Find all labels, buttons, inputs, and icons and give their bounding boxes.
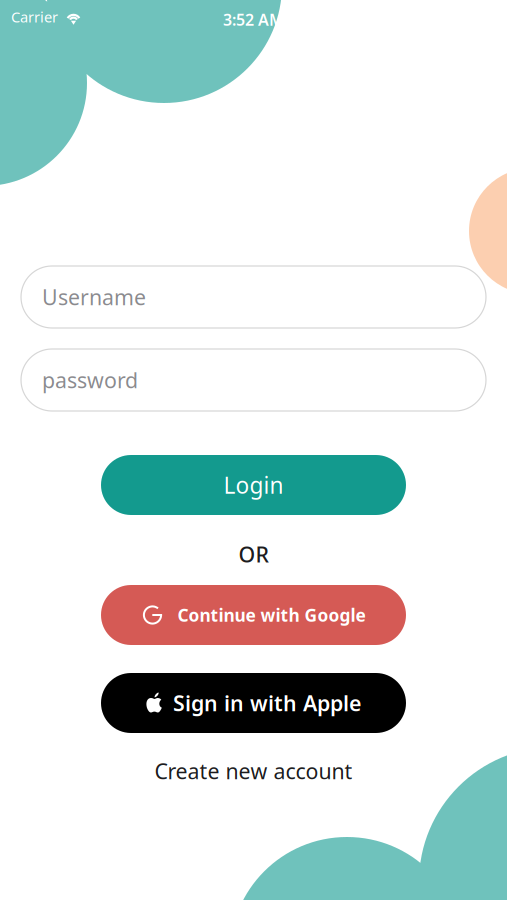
staticText: password <box>42 366 138 394</box>
staticText: OR <box>238 540 268 568</box>
staticText: 3:52 AM <box>223 9 284 30</box>
button[interactable]: Login <box>101 455 406 515</box>
button[interactable]: Continue with Google <box>101 585 406 645</box>
staticText: Username <box>42 283 146 311</box>
button[interactable]: Sign in with Apple <box>101 673 406 733</box>
staticText: Login <box>223 470 283 500</box>
staticText: Carrier <box>11 7 58 26</box>
button[interactable]: Create new account <box>0 751 507 791</box>
staticText: Create new account <box>154 757 352 785</box>
button[interactable]: Username <box>21 266 486 328</box>
staticText: Sign in with Apple <box>173 689 361 717</box>
button[interactable]: password <box>21 349 486 411</box>
staticText: Continue with Google <box>177 603 365 626</box>
